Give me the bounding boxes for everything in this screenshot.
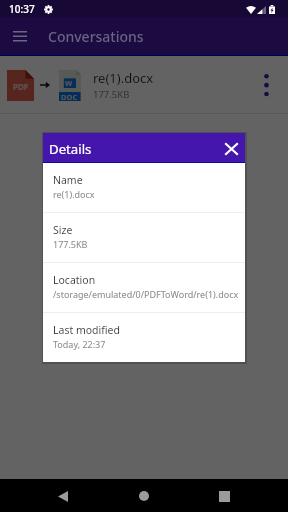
button[interactable]: Home — [128, 480, 160, 512]
staticText: Size — [53, 223, 73, 237]
button[interactable]: Back — [47, 480, 79, 512]
button[interactable]: PDF — [0, 56, 288, 114]
button[interactable]: Location — [43, 263, 245, 312]
staticText: DOC — [61, 92, 78, 102]
staticText: PDF — [13, 81, 29, 92]
staticText: re(1).docx — [93, 69, 154, 87]
staticText: re(1).docx — [53, 188, 95, 200]
staticText: Conversations — [48, 27, 144, 46]
button[interactable]: Recent apps — [208, 480, 240, 512]
staticText: 10:37 — [9, 2, 35, 16]
staticText: W — [65, 78, 73, 88]
button[interactable]: Name — [43, 163, 245, 212]
button[interactable]: Close — [220, 138, 242, 160]
staticText: 177.5KB — [53, 238, 88, 250]
staticText: Last modified — [53, 323, 120, 337]
staticText: Location — [53, 273, 96, 287]
button[interactable]: More options — [251, 63, 281, 107]
staticText: Today, 22:37 — [53, 338, 106, 350]
staticText: 177.5KB — [93, 88, 130, 101]
staticText: Details — [49, 140, 92, 158]
button[interactable]: Last modified — [43, 313, 245, 362]
button[interactable]: Size — [43, 213, 245, 262]
staticText: /storage/emulated/0/PDFToWord/re(1).docx — [53, 288, 239, 300]
staticText: Name — [53, 173, 83, 187]
button[interactable]: Open navigation menu — [7, 22, 33, 48]
